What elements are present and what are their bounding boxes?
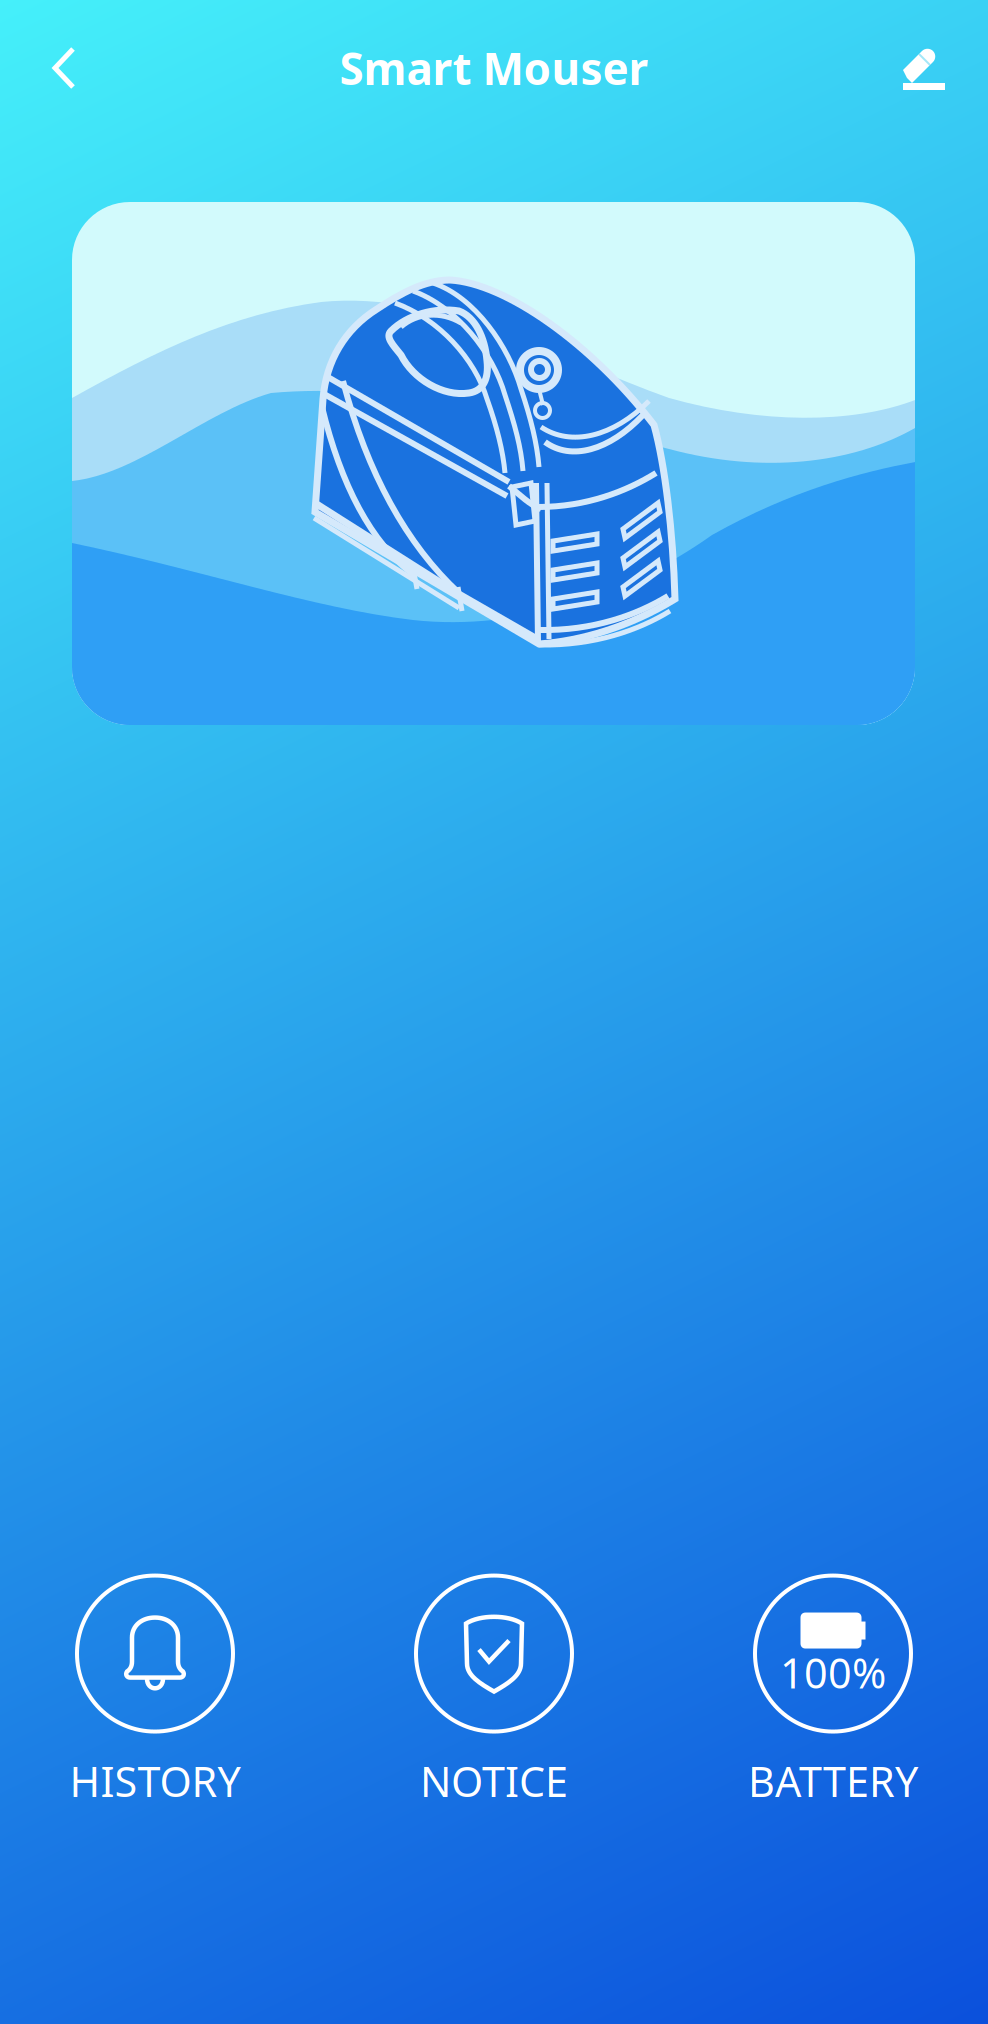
- button[interactable]: HISTORY: [25, 1576, 285, 1808]
- staticText: BATTERY: [748, 1754, 918, 1808]
- staticText: Smart Mouser: [339, 39, 648, 97]
- button[interactable]: Edit: [883, 27, 967, 111]
- staticText: 100%: [780, 1645, 886, 1700]
- staticText: HISTORY: [69, 1754, 240, 1808]
- button[interactable]: NOTICE: [364, 1576, 624, 1808]
- button[interactable]: Back: [28, 22, 100, 114]
- staticText: NOTICE: [420, 1754, 568, 1808]
- button[interactable]: 100%: [703, 1576, 963, 1808]
